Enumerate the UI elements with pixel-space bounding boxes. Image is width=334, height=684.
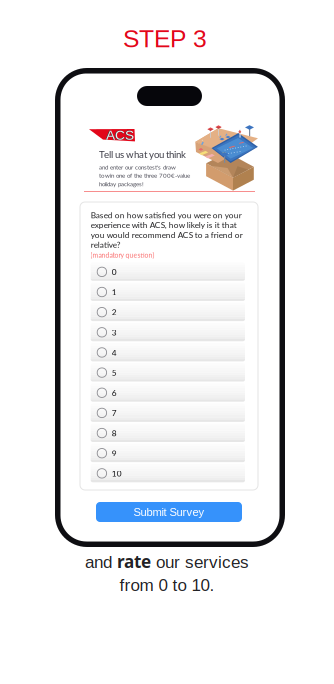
staticText: holiday packages!	[99, 180, 144, 188]
staticText: 5	[112, 368, 117, 377]
staticText: 10	[112, 468, 122, 478]
button[interactable]: Submit Survey	[96, 502, 242, 522]
staticText: 0	[112, 267, 117, 277]
button[interactable]: STEP 3	[123, 25, 207, 53]
button[interactable]: 6	[91, 383, 245, 402]
staticText: to win one of the three 700€-value	[99, 172, 190, 179]
staticText: 6	[112, 388, 117, 398]
staticText: you would recommend ACS to a friend or	[91, 230, 243, 240]
staticText: STEP 3	[123, 25, 207, 53]
staticText: 2	[112, 307, 117, 317]
button[interactable]: 7	[91, 403, 245, 422]
button[interactable]: 1	[91, 282, 245, 301]
staticText: 8	[112, 428, 117, 438]
button[interactable]: 2	[91, 303, 245, 321]
staticText: ACS	[106, 127, 134, 142]
staticText: 9	[112, 448, 117, 458]
staticText: ACS	[106, 127, 134, 142]
button[interactable]: 4	[91, 343, 245, 361]
staticText: Tell us what you think	[99, 148, 186, 160]
button[interactable]: 9	[91, 444, 245, 462]
staticText: Based on how satisfied you were on your	[91, 210, 242, 220]
staticText: 1	[112, 287, 117, 297]
staticText: from 0 to 10.	[119, 576, 214, 595]
button[interactable]: 5	[91, 363, 245, 381]
staticText: 4	[112, 347, 117, 357]
button[interactable]: 10	[91, 464, 245, 482]
staticText: experience with ACS, how likely is it th…	[91, 220, 237, 230]
staticText: ACS	[106, 128, 134, 143]
staticText: (mandatory question)	[90, 251, 154, 259]
staticText: and enter our constest's draw	[99, 163, 176, 171]
button[interactable]: 3	[91, 323, 245, 341]
staticText: relative?	[91, 240, 121, 250]
staticText: Submit Survey	[133, 506, 204, 518]
staticText: and rate our services	[85, 550, 249, 573]
staticText: 3	[112, 327, 117, 337]
button[interactable]: 0	[91, 262, 245, 281]
staticText: 7	[112, 408, 117, 418]
button[interactable]: 8	[91, 424, 245, 442]
